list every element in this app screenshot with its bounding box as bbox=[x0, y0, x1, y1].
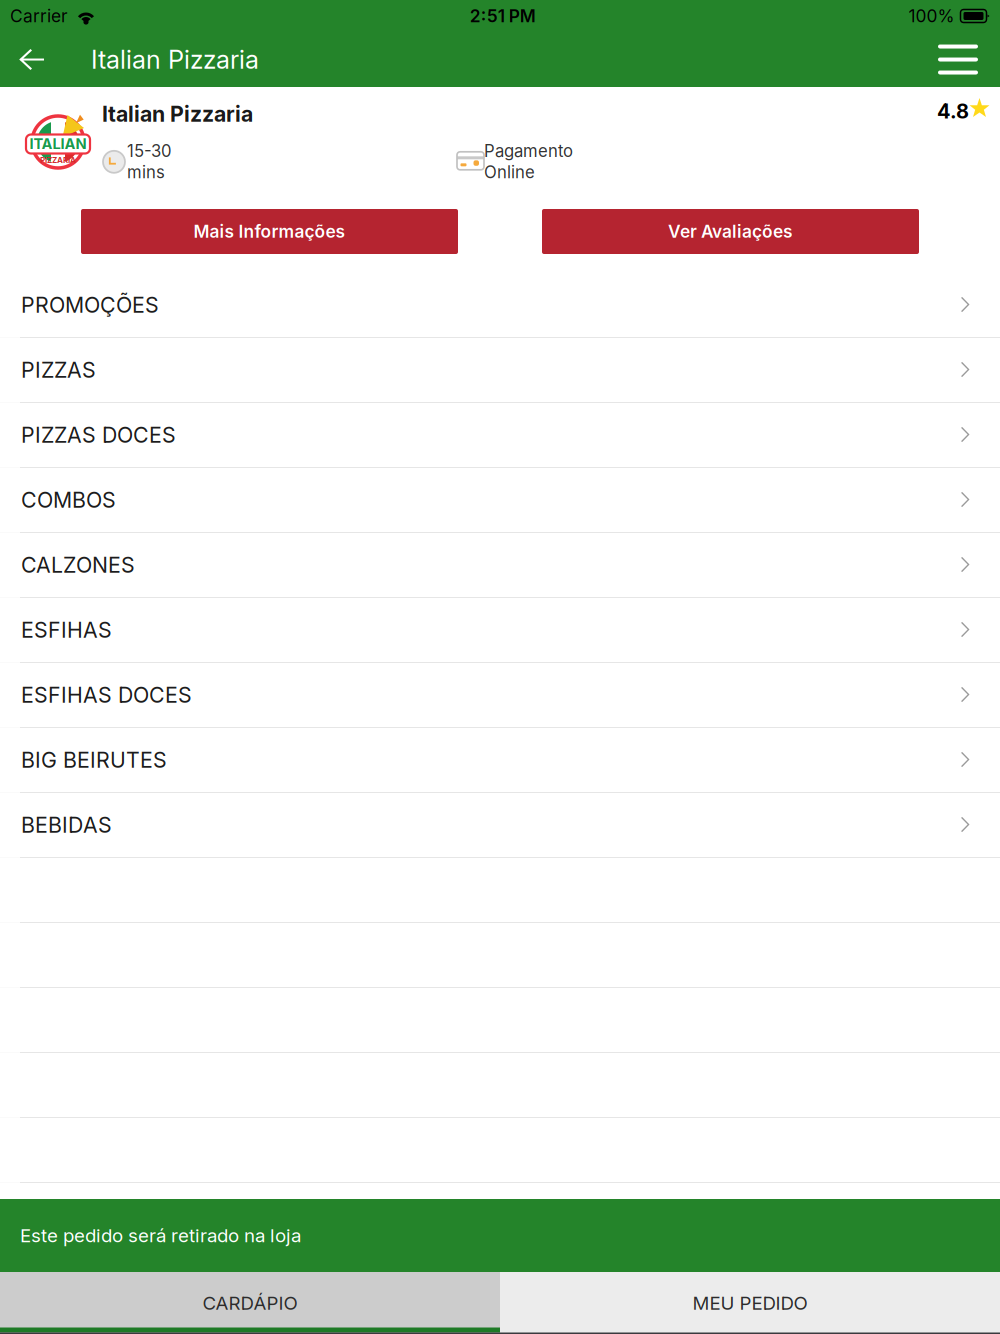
button[interactable] bbox=[0, 923, 1000, 988]
button[interactable]: CALZONES bbox=[0, 533, 1000, 598]
staticText: Pagamento bbox=[484, 141, 573, 161]
staticText: ESFIHAS DOCES bbox=[21, 682, 192, 708]
button[interactable] bbox=[0, 1183, 1000, 1248]
button[interactable]: ESFIHAS DOCES bbox=[0, 663, 1000, 728]
staticText: MEU PEDIDO bbox=[692, 1292, 807, 1314]
staticText: mins bbox=[127, 162, 165, 182]
button[interactable]: ESFIHAS bbox=[0, 598, 1000, 663]
button[interactable]: Back bbox=[0, 32, 64, 87]
staticText: Carrier bbox=[10, 5, 68, 26]
button[interactable]: Ver Avaliações bbox=[542, 209, 919, 254]
button[interactable]: PIZZAS bbox=[0, 338, 1000, 403]
staticText: PIZZARIA bbox=[40, 155, 76, 165]
staticText: Italian Pizzaria bbox=[102, 101, 253, 127]
staticText: CARDÁPIO bbox=[202, 1292, 297, 1314]
staticText: 2:51 PM bbox=[470, 5, 536, 26]
staticText: CALZONES bbox=[21, 552, 135, 578]
staticText: Este pedido será retirado na loja bbox=[20, 1224, 301, 1247]
staticText: BIG BEIRUTES bbox=[21, 747, 167, 773]
button[interactable]: Menu bbox=[916, 32, 1000, 87]
staticText: 15-30 bbox=[127, 141, 172, 161]
staticText: ESFIHAS bbox=[21, 617, 112, 643]
button[interactable]: CARDÁPIO bbox=[0, 1272, 500, 1334]
staticText: BEBIDAS bbox=[21, 812, 112, 838]
staticText: PROMOÇÕES bbox=[21, 292, 159, 318]
button[interactable] bbox=[0, 988, 1000, 1053]
button[interactable]: BEBIDAS bbox=[0, 793, 1000, 858]
button[interactable] bbox=[0, 1053, 1000, 1118]
staticText: Mais Informações bbox=[193, 221, 345, 242]
staticText: ITALIAN bbox=[29, 135, 86, 153]
staticText: PIZZAS bbox=[21, 357, 96, 383]
button[interactable]: MEU PEDIDO bbox=[500, 1272, 1000, 1334]
staticText: COMBOS bbox=[21, 487, 116, 513]
staticText: Ver Avaliações bbox=[668, 221, 793, 242]
button[interactable] bbox=[0, 1118, 1000, 1183]
button[interactable]: COMBOS bbox=[0, 468, 1000, 533]
staticText: Online bbox=[484, 162, 535, 182]
button[interactable] bbox=[0, 858, 1000, 923]
button[interactable]: PIZZAS DOCES bbox=[0, 403, 1000, 468]
button[interactable]: BIG BEIRUTES bbox=[0, 728, 1000, 793]
staticText: 100% bbox=[908, 5, 954, 26]
staticText: PIZZAS DOCES bbox=[21, 422, 176, 448]
button[interactable]: PROMOÇÕES bbox=[0, 273, 1000, 338]
button[interactable]: Mais Informações bbox=[81, 209, 458, 254]
staticText: Italian Pizzaria bbox=[91, 44, 259, 75]
staticText: 4.8 bbox=[937, 99, 969, 123]
